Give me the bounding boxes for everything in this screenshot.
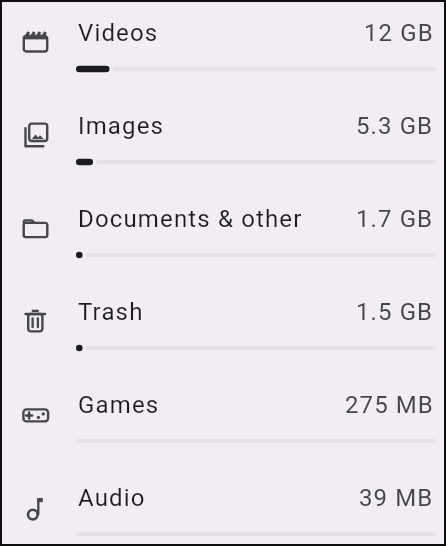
staticText: Images bbox=[78, 112, 165, 140]
button[interactable]: Games bbox=[2, 374, 444, 467]
staticText: 1.5 GB bbox=[356, 298, 434, 326]
button[interactable]: Trash bbox=[2, 281, 444, 374]
button[interactable]: Images bbox=[2, 95, 444, 188]
staticText: 1.7 GB bbox=[356, 205, 434, 233]
staticText: Games bbox=[78, 391, 160, 419]
staticText: 39 MB bbox=[359, 484, 434, 512]
staticText: Documents & other bbox=[78, 205, 303, 233]
staticText: 275 MB bbox=[345, 391, 434, 419]
staticText: Trash bbox=[78, 298, 144, 326]
button[interactable]: Videos bbox=[2, 2, 444, 95]
button[interactable]: Audio bbox=[2, 467, 444, 544]
staticText: 12 GB bbox=[364, 19, 434, 47]
staticText: 5.3 GB bbox=[356, 112, 434, 140]
staticText: Videos bbox=[78, 19, 159, 47]
button[interactable]: Documents & other bbox=[2, 188, 444, 281]
staticText: Audio bbox=[78, 484, 146, 512]
